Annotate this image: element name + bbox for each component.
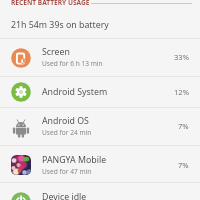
staticText: Device idle — [42, 191, 87, 200]
staticText: Used for 6 h 13 min — [42, 59, 103, 68]
staticText: Android System — [42, 86, 108, 98]
staticText: 7% — [178, 160, 189, 170]
staticText: PANGYA Mobile — [42, 154, 107, 166]
staticText: Used for 24 min — [42, 128, 92, 137]
other: Device idle battery usage — [11, 192, 31, 200]
button[interactable]: Screen battery usage — [0, 39, 200, 77]
other: PANGYA Mobile battery usage — [11, 155, 31, 175]
staticText: 21h 54m 39s on battery — [11, 19, 109, 31]
staticText: Screen — [42, 46, 70, 58]
button[interactable]: Android OS battery usage — [0, 108, 200, 146]
staticText: Android OS — [42, 115, 89, 127]
other: Android OS battery usage — [11, 117, 31, 137]
staticText: 12% — [174, 87, 189, 97]
staticText: RECENT BATTERY USAGE — [11, 0, 90, 7]
staticText: 7% — [178, 121, 189, 131]
other: Screen battery usage — [11, 48, 31, 68]
button[interactable]: Android System battery usage — [0, 76, 200, 108]
other: Android System battery usage — [11, 82, 31, 102]
button[interactable]: PANGYA Mobile battery usage — [0, 146, 200, 183]
staticText: 33% — [174, 52, 189, 62]
staticText: Used for 47 min — [42, 167, 92, 176]
button[interactable]: Device idle battery usage — [0, 183, 200, 200]
